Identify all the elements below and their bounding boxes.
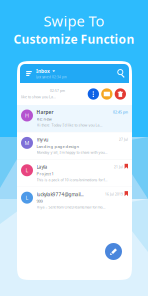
button[interactable]: L xyxy=(17,187,132,214)
staticText: Swipe To xyxy=(43,11,104,31)
button[interactable]: Search xyxy=(115,64,127,83)
staticText: 16 Jul 2019 xyxy=(105,192,123,197)
staticText: Harper xyxy=(36,109,53,115)
staticText: L xyxy=(25,167,28,174)
button[interactable]: Compose xyxy=(105,243,122,260)
staticText: H xyxy=(25,112,29,119)
button[interactable]: Mark unread xyxy=(101,88,112,100)
staticText: Customize Function xyxy=(13,31,134,47)
staticText: my vu xyxy=(36,136,48,143)
button[interactable]: More xyxy=(88,88,99,100)
button[interactable]: Menu xyxy=(22,64,36,83)
staticText: Project 1 xyxy=(36,171,53,176)
staticText: Monday y'all, I'm happy to share with yo… xyxy=(36,150,107,155)
staticText: luckylak9774@gmail... xyxy=(36,191,83,198)
staticText: M xyxy=(24,139,29,147)
staticText: 27 Jul xyxy=(119,137,128,142)
staticText: Hiya – Sent from OneDreamEmail for mo... xyxy=(36,205,105,210)
staticText: Inbox xyxy=(36,68,50,74)
staticText: 21 Jul xyxy=(114,165,123,169)
staticText: Re: new xyxy=(36,116,51,122)
staticText: 999 xyxy=(36,198,42,204)
button[interactable]: Delete xyxy=(115,88,126,100)
button[interactable]: H xyxy=(17,105,132,132)
staticText: L xyxy=(25,194,28,201)
staticText: This is a pack of 10 icons/animations fo… xyxy=(36,177,107,182)
staticText: Hi there Today I'd like to show you La..… xyxy=(36,123,102,127)
staticText: like to show you La... xyxy=(21,94,56,99)
staticText: 02:57 pm xyxy=(50,89,65,93)
staticText: 02:45 pm xyxy=(113,110,128,114)
button[interactable]: M xyxy=(17,132,132,159)
staticText: Landing page design xyxy=(36,143,79,149)
button[interactable]: L xyxy=(17,160,132,187)
staticText: Layla xyxy=(36,164,47,170)
staticText: Last synced 02:34 pm xyxy=(36,75,67,79)
